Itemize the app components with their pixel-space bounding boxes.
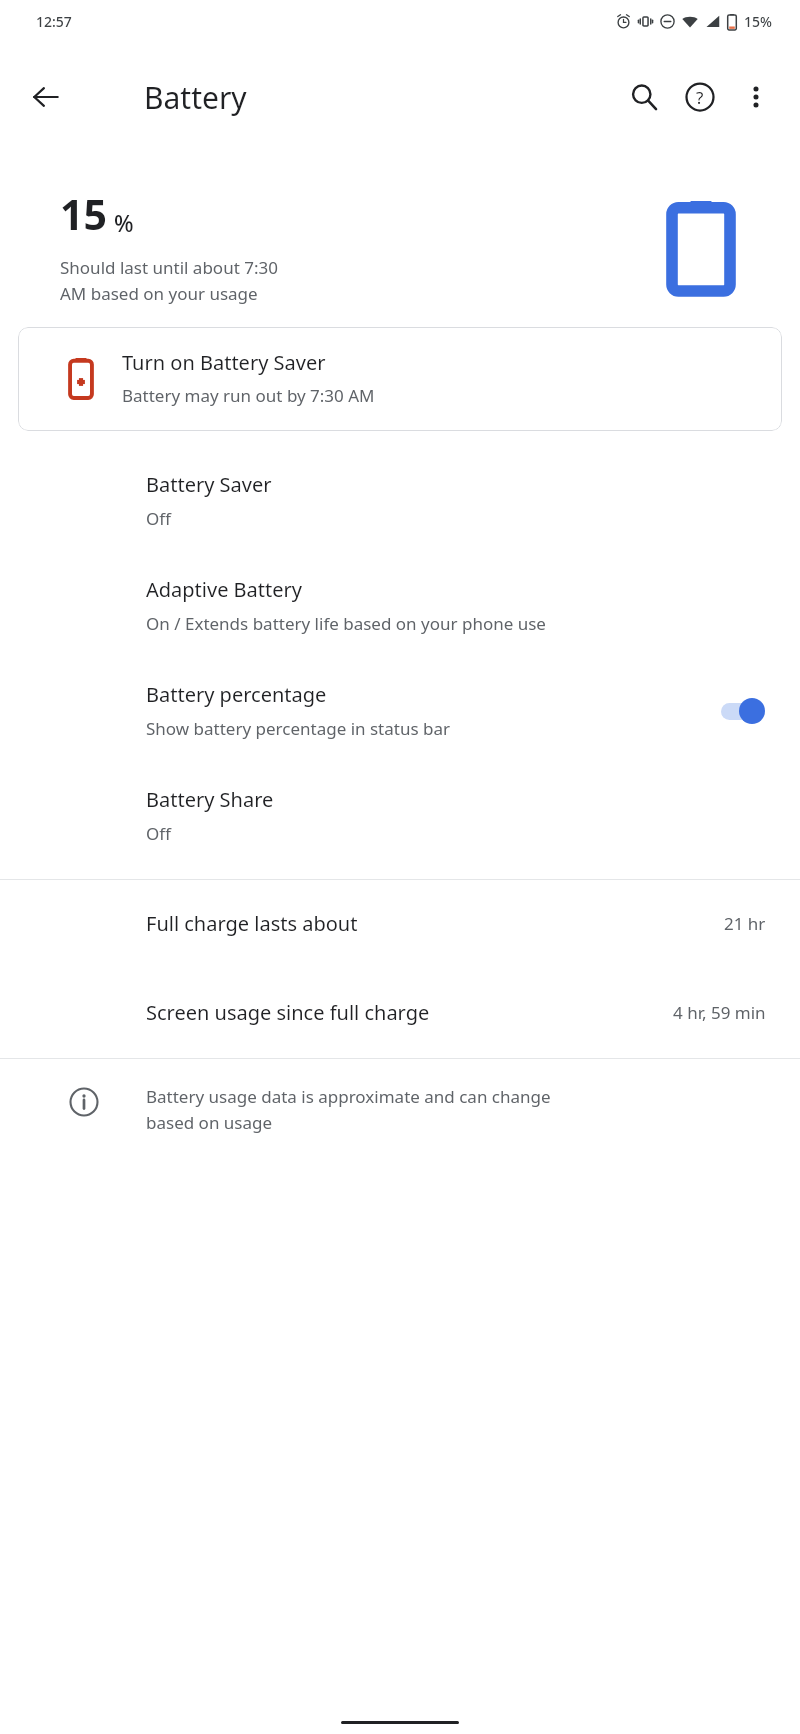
staticText: 15	[60, 186, 107, 242]
staticText: Adaptive Battery	[146, 576, 303, 603]
staticText: Battery may run out by 7:30 AM	[122, 384, 375, 407]
staticText: Turn on Battery Saver	[122, 349, 326, 376]
staticText: Off	[146, 507, 171, 530]
staticText: 12:57	[36, 12, 72, 31]
staticText: Battery percentage	[146, 681, 327, 708]
button[interactable]: More options	[728, 69, 784, 125]
staticText: Battery	[144, 77, 247, 118]
staticText: Battery Share	[146, 786, 274, 813]
button[interactable]: Adaptive Battery	[0, 554, 800, 659]
button[interactable]: Turn on Battery Saver	[18, 327, 782, 431]
staticText: On / Extends battery life based on your …	[146, 612, 546, 635]
staticText: Should last until about 7:30 AM based on…	[60, 256, 278, 305]
button[interactable]: Full charge lasts about	[0, 880, 800, 969]
staticText: 21 hr	[724, 912, 766, 935]
button[interactable]: Battery percentage	[0, 659, 800, 764]
button[interactable]: Screen usage since full charge	[0, 969, 800, 1058]
staticText: 15%	[744, 12, 772, 31]
button[interactable]: Help	[672, 69, 728, 125]
staticText: Show battery percentage in status bar	[146, 717, 450, 740]
button[interactable]: Back	[20, 71, 72, 123]
staticText: ?	[696, 86, 704, 109]
staticText: Battery Saver	[146, 471, 272, 498]
button[interactable]: Search	[616, 69, 672, 125]
staticText: Off	[146, 822, 171, 845]
button[interactable]: Battery Saver	[0, 449, 800, 554]
staticText: Screen usage since full charge	[146, 999, 673, 1026]
button[interactable]: Battery Share	[0, 764, 800, 869]
staticText: %	[114, 207, 134, 238]
staticText: Battery usage data is approximate and ca…	[146, 1085, 551, 1134]
staticText: 4 hr, 59 min	[673, 1001, 766, 1024]
staticText: Full charge lasts about	[146, 910, 724, 937]
